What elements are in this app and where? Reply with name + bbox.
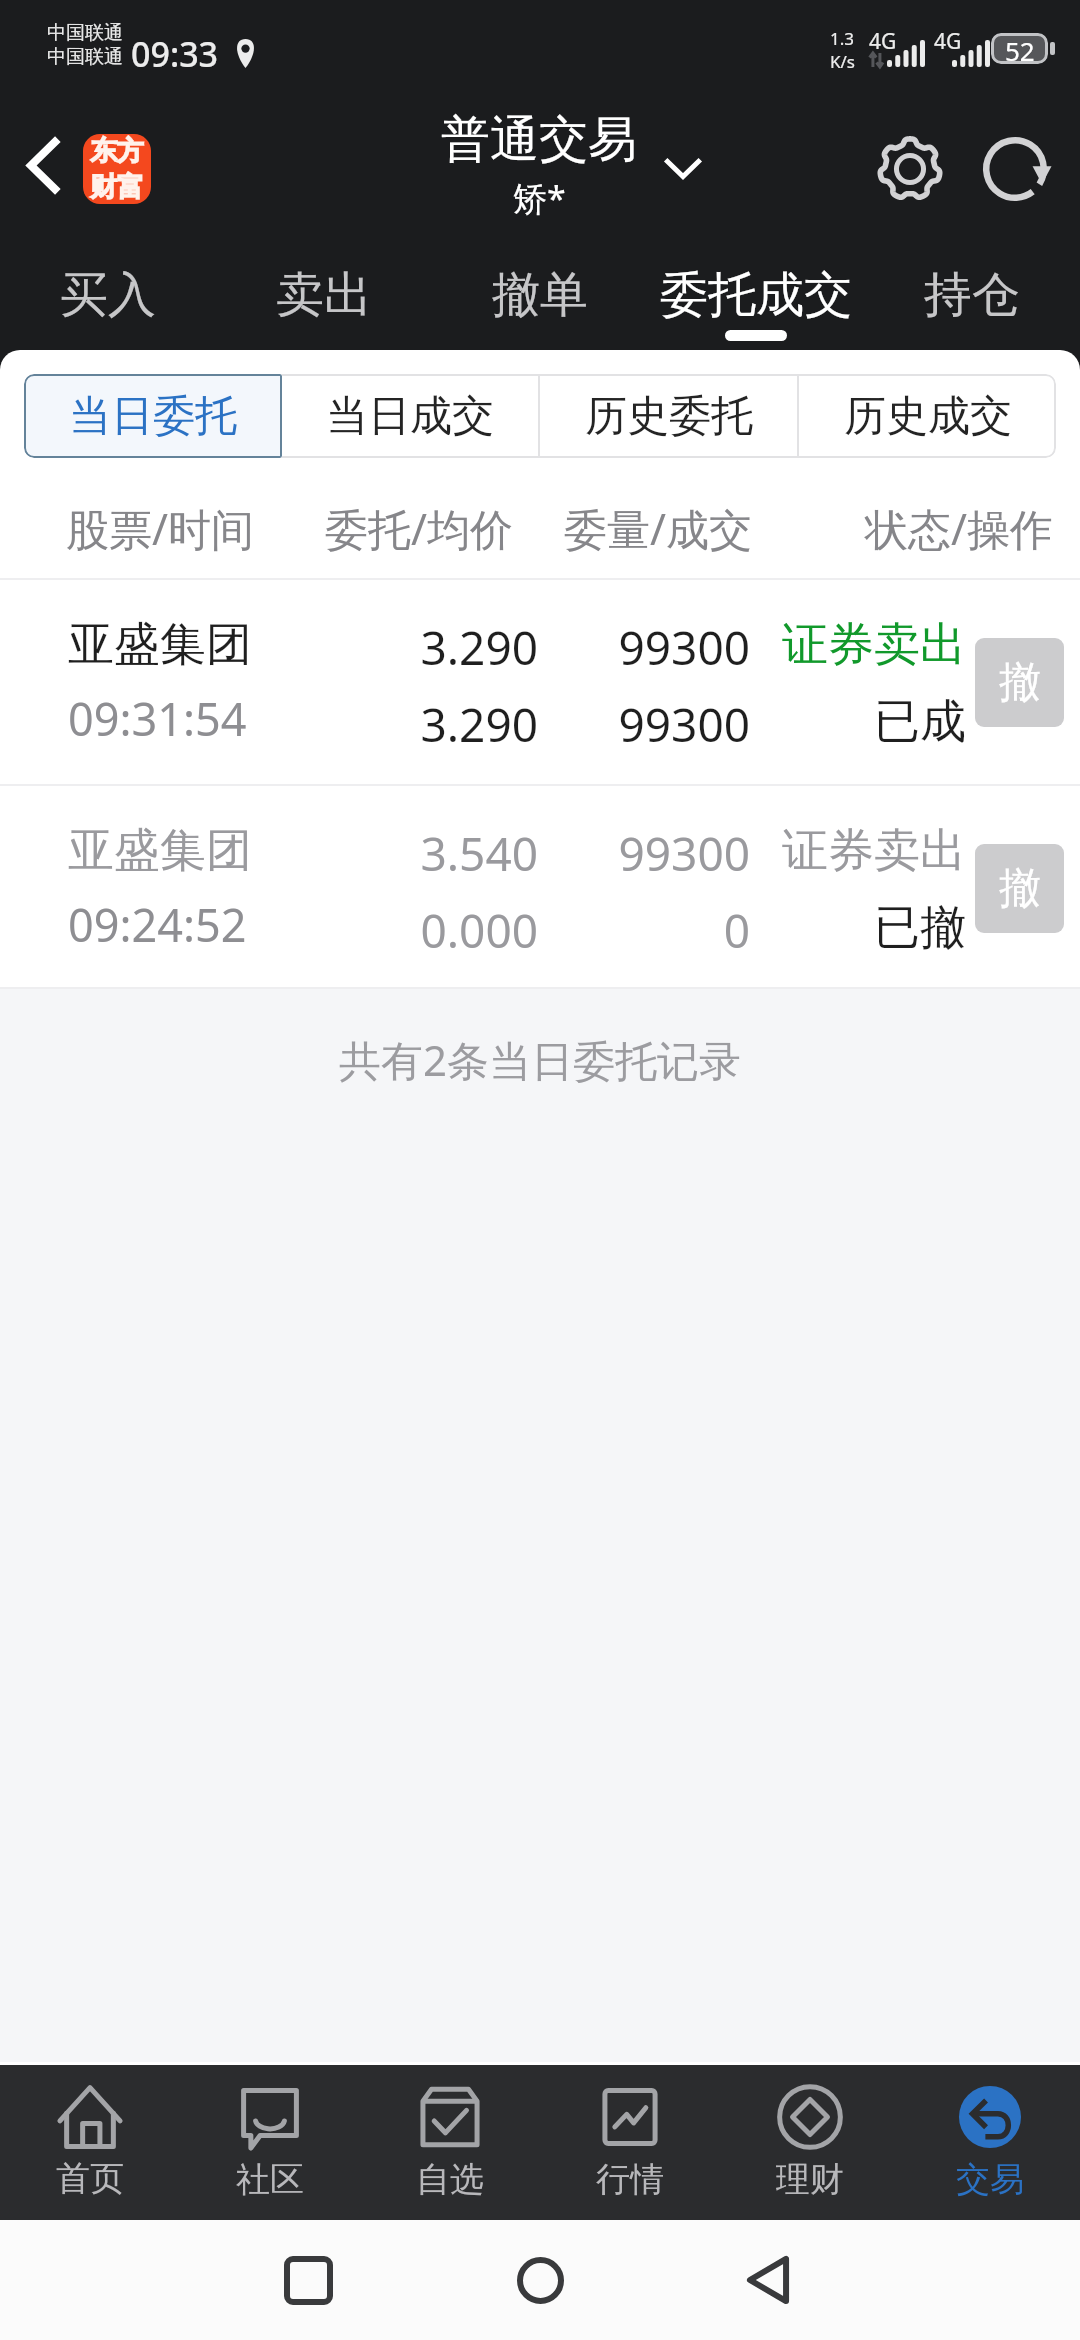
staticText: 撤单 — [492, 265, 588, 325]
button[interactable]: 当日委托 — [24, 374, 280, 458]
staticText: 东方 — [90, 134, 144, 168]
staticText: 行情 — [596, 2158, 664, 2201]
button[interactable]: 行情 — [540, 2065, 720, 2220]
staticText: 理财 — [776, 2158, 844, 2201]
staticText: 已成 — [566, 693, 966, 751]
staticText: 99300 — [350, 822, 750, 885]
button[interactable]: 卖出 — [216, 235, 432, 350]
staticText: 1.3 — [830, 27, 855, 50]
staticText: 交易 — [956, 2158, 1024, 2201]
button[interactable]: Back — [713, 2225, 823, 2335]
button[interactable]: 亚盛集团 — [0, 786, 1080, 989]
button[interactable]: 普通交易 — [347, 109, 731, 221]
staticText: 证券卖出 — [566, 616, 966, 674]
staticText: 09:31:54 — [68, 688, 247, 749]
button[interactable]: 历史委托 — [540, 374, 797, 458]
staticText: 共有2条当日委托记录 — [339, 1031, 742, 1088]
button[interactable]: 撤 — [975, 638, 1064, 727]
button[interactable]: 亚盛集团 — [0, 580, 1080, 786]
button[interactable]: East Money — [83, 134, 151, 204]
staticText: 中国联通 — [47, 45, 123, 69]
staticText: 当日委托 — [69, 390, 237, 443]
staticText: 已撤 — [566, 899, 966, 957]
staticText: 4G — [934, 27, 962, 56]
button[interactable]: Settings — [860, 119, 960, 219]
staticText: 委托成交 — [660, 265, 852, 325]
button[interactable]: 理财 — [720, 2065, 900, 2220]
button[interactable]: Home — [485, 2225, 595, 2335]
staticText: 委量/成交 — [564, 499, 752, 558]
button[interactable]: 历史成交 — [799, 374, 1056, 458]
staticText: 当日成交 — [326, 390, 494, 443]
staticText: 3.290 — [138, 616, 538, 679]
button[interactable]: 买入 — [0, 235, 216, 350]
staticText: 股票/时间 — [66, 499, 254, 558]
staticText: 买入 — [60, 265, 156, 325]
button[interactable]: 交易 — [900, 2065, 1080, 2220]
button[interactable]: Back — [0, 113, 95, 217]
staticText: K/s — [830, 50, 855, 73]
button[interactable]: 撤单 — [432, 235, 648, 350]
button[interactable]: 委托成交 — [648, 235, 864, 350]
staticText: 52 — [1005, 33, 1035, 64]
staticText: 历史委托 — [585, 390, 753, 443]
staticText: 09:24:52 — [68, 894, 247, 955]
button[interactable]: 自选 — [360, 2065, 540, 2220]
button[interactable]: 当日成交 — [282, 374, 538, 458]
button[interactable]: 当日委托 — [24, 374, 282, 458]
staticText: 普通交易 — [441, 109, 637, 171]
staticText: 社区 — [236, 2158, 304, 2201]
staticText: 历史成交 — [844, 390, 1012, 443]
staticText: 4G — [869, 27, 897, 56]
button[interactable]: Recents — [253, 2225, 363, 2335]
staticText: 首页 — [56, 2157, 124, 2200]
staticText: 自选 — [416, 2158, 484, 2201]
staticText: 撤 — [999, 862, 1041, 915]
staticText: 0 — [350, 899, 750, 962]
button[interactable]: 首页 — [0, 2065, 180, 2220]
staticText: 3.540 — [138, 822, 538, 885]
staticText: 亚盛集团 — [68, 616, 252, 674]
staticText: 0.000 — [138, 899, 538, 962]
staticText: 矫* — [513, 175, 566, 221]
button[interactable]: 社区 — [180, 2065, 360, 2220]
button[interactable]: 持仓 — [864, 235, 1080, 350]
staticText: 卖出 — [276, 265, 372, 325]
button[interactable]: Switch account — [645, 131, 721, 207]
staticText: 当日委托 — [68, 390, 236, 443]
staticText: 99300 — [350, 616, 750, 679]
button[interactable]: Refresh — [965, 119, 1065, 219]
staticText: 证券卖出 — [566, 822, 966, 880]
staticText: 状态/操作 — [865, 499, 1053, 558]
staticText: 3.290 — [138, 693, 538, 756]
staticText: 委托/均价 — [325, 499, 513, 558]
staticText: 09:33 — [131, 31, 219, 77]
staticText: 99300 — [350, 693, 750, 756]
staticText: 中国联通 — [47, 21, 123, 45]
button[interactable]: 撤 — [975, 844, 1064, 933]
staticText: 持仓 — [924, 265, 1020, 325]
staticText: 财富 — [90, 170, 144, 204]
staticText: 撤 — [999, 656, 1041, 709]
staticText: 亚盛集团 — [68, 822, 252, 880]
